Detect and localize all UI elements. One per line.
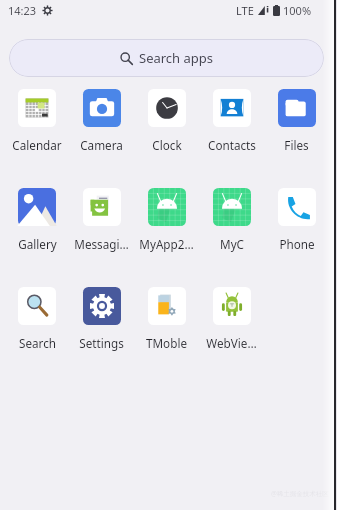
button[interactable]: Files	[264, 89, 329, 153]
button[interactable]: Gallery	[5, 188, 69, 252]
button[interactable]: Phone	[264, 188, 329, 252]
staticText: Search apps	[139, 49, 214, 67]
button[interactable]: Camera	[69, 89, 134, 153]
button[interactable]: Search apps	[9, 39, 324, 77]
button[interactable]: MyApp2…	[134, 188, 199, 252]
button[interactable]: Clock	[134, 89, 199, 153]
button[interactable]: Messagi…	[69, 188, 134, 252]
staticText: 14:23	[8, 3, 37, 18]
staticText: TMoble	[146, 335, 187, 351]
button[interactable]: Search	[5, 287, 69, 351]
staticText: @稀土掘金技术社区	[271, 489, 329, 498]
staticText: Messagi…	[74, 236, 129, 252]
staticText: Calendar	[12, 137, 62, 153]
staticText: Search	[19, 335, 56, 351]
button[interactable]: Settings	[69, 287, 134, 351]
button[interactable]: Calendar	[5, 89, 69, 153]
staticText: Gallery	[18, 236, 57, 252]
staticText: Settings	[79, 335, 124, 351]
staticText: Clock	[152, 137, 182, 153]
staticText: Phone	[279, 236, 315, 252]
staticText: LTE	[236, 3, 254, 18]
button[interactable]: TMoble	[134, 287, 199, 351]
staticText: 100%	[283, 3, 312, 18]
staticText: WebVie…	[206, 335, 257, 351]
button[interactable]: Contacts	[199, 89, 264, 153]
button[interactable]: WebVie…	[199, 287, 264, 351]
button[interactable]: MyC	[199, 188, 264, 252]
staticText: Contacts	[208, 137, 256, 153]
staticText: Camera	[80, 137, 123, 153]
staticText: Files	[284, 137, 309, 153]
staticText: MyC	[220, 236, 244, 252]
staticText: MyApp2…	[139, 236, 194, 252]
